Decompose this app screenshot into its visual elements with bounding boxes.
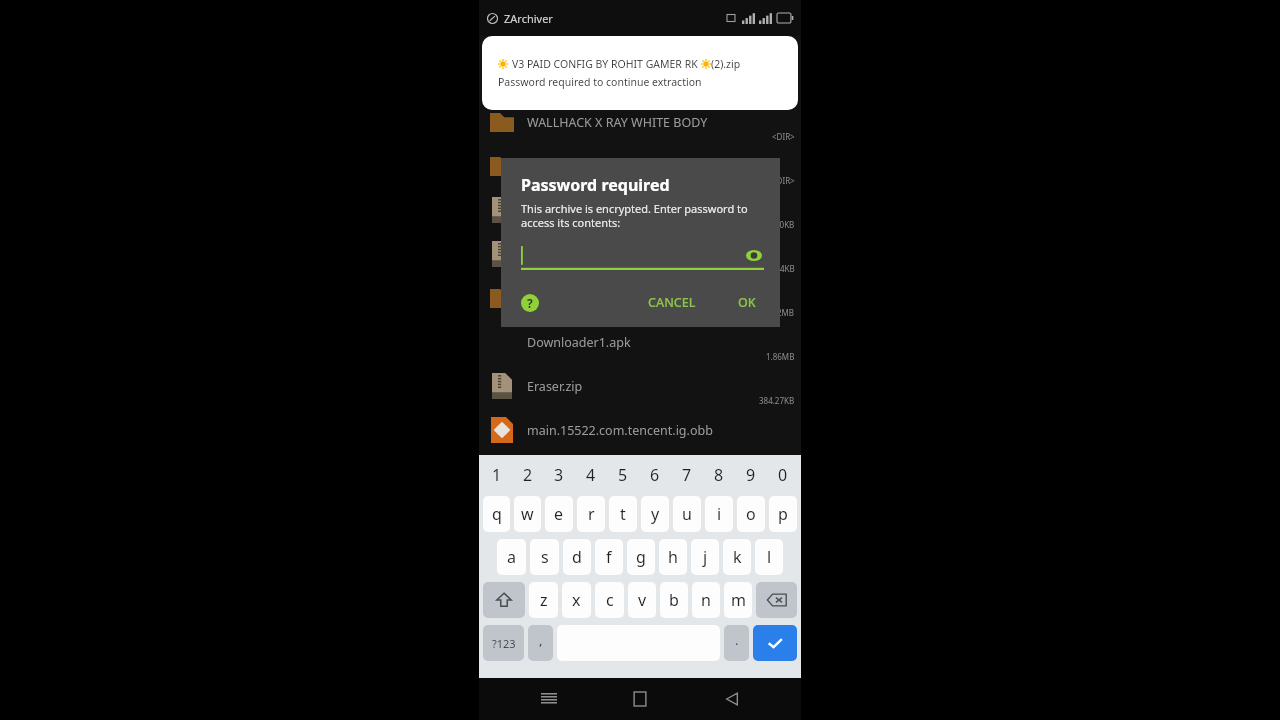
button[interactable]: h [659,539,687,575]
button[interactable]: Enter [753,625,797,661]
button[interactable]: b [660,582,688,618]
button[interactable]: , [528,625,553,661]
staticText: . [735,631,739,649]
staticText: 2 [523,464,533,486]
staticText: r [588,503,595,525]
button[interactable]: Help [521,294,539,312]
button[interactable]: WALLHACK X RAY WHITE BODY [479,100,801,144]
button[interactable]: w [514,496,541,532]
staticText: V3 PAID CONFIG BY ROHIT GAMER RK [512,57,701,71]
button[interactable]: r [577,496,605,532]
button[interactable]: . [724,625,749,661]
button[interactable]: 4KB [479,232,801,276]
staticText: WALLHACK X RAY WHITE BODY [527,114,708,131]
button[interactable]: 9 [735,458,767,492]
staticText: d [572,546,582,568]
staticText: q [492,503,502,525]
button[interactable]: i [705,496,733,532]
button[interactable]: m [724,582,752,618]
button[interactable]: 1 [481,458,512,492]
staticText: 2MB [777,307,795,318]
button[interactable]: e [545,496,573,532]
staticText: ZArchiver [504,11,553,26]
button[interactable]: Back [710,678,754,720]
button[interactable]: 4 [575,458,607,492]
button[interactable]: main.15522.com.tencent.ig.obb [479,408,801,452]
button[interactable]: t [609,496,637,532]
button[interactable]: o [737,496,765,532]
staticText: f [606,546,612,568]
button[interactable]: q [483,496,510,532]
staticText: 1 [492,464,502,486]
staticText: l [767,546,772,568]
button[interactable]: Backspace [756,582,797,618]
button[interactable]: n [692,582,720,618]
button[interactable]: g [627,539,655,575]
staticText: 20KB [775,219,795,230]
staticText: 0 [778,464,788,486]
staticText: z [540,589,548,611]
staticText: w [521,503,534,525]
button[interactable]: Show password [746,250,762,261]
button[interactable]: j [691,539,719,575]
staticText: <DIR> [772,131,795,142]
button[interactable]: Recents [527,678,571,720]
staticText: v [638,589,647,611]
button[interactable]: Downloader1.apk [479,320,801,364]
staticText: e [554,503,564,525]
button[interactable]: Home [618,678,662,720]
button[interactable]: CANCEL [640,290,704,315]
button[interactable]: u [673,496,701,532]
button[interactable]: ?123 [483,625,524,661]
staticText: t [620,503,626,525]
button[interactable]: a [497,539,526,575]
staticText: Eraser.zip [527,378,583,395]
button[interactable]: p [769,496,797,532]
button[interactable]: l [755,539,783,575]
staticText: p [778,503,788,525]
staticText: x [572,589,581,611]
staticText: 9 [746,464,756,486]
button[interactable]: 5 [607,458,639,492]
button[interactable]: Show password [521,244,764,270]
button[interactable]: 8 [703,458,735,492]
staticText: 1.86MB [766,351,795,362]
button[interactable]: 2 [512,458,543,492]
staticText: Downloader1.apk [527,334,631,351]
button[interactable]: y [641,496,669,532]
staticText: s [541,546,549,568]
button[interactable]: 0 [767,458,799,492]
button[interactable]: x [562,582,591,618]
staticText: 3 [554,464,564,486]
button[interactable]: z [529,582,558,618]
staticText: h [668,546,678,568]
button[interactable]: 7 [671,458,703,492]
button[interactable]: f [595,539,623,575]
button[interactable]: s [530,539,559,575]
button[interactable]: d [563,539,591,575]
staticText: c [606,589,614,611]
button[interactable]: c [595,582,624,618]
staticText: main.15522.com.tencent.ig.obb [527,422,713,439]
button[interactable]: 3 [543,458,575,492]
button[interactable]: v [628,582,656,618]
button[interactable]: 2MB [479,276,801,320]
staticText: 8 [714,464,724,486]
button[interactable]: OK [730,290,764,315]
staticText: y [651,503,660,525]
staticText: j [703,546,708,568]
button[interactable]: 6 [639,458,671,492]
staticText: ?123 [492,636,516,651]
button[interactable]: 20KB [479,188,801,232]
staticText: 5 [618,464,628,486]
staticText: Password required [521,174,670,196]
button[interactable]: Shift [483,582,525,618]
button[interactable]: V3 PAID CONFIG BY ROHIT GAMER RK [482,36,798,110]
staticText: i [717,503,722,525]
button[interactable]: k [723,539,751,575]
button[interactable]: zapya [479,144,801,188]
staticText: 384.27KB [759,395,795,406]
button[interactable]: Eraser.zip [479,364,801,408]
